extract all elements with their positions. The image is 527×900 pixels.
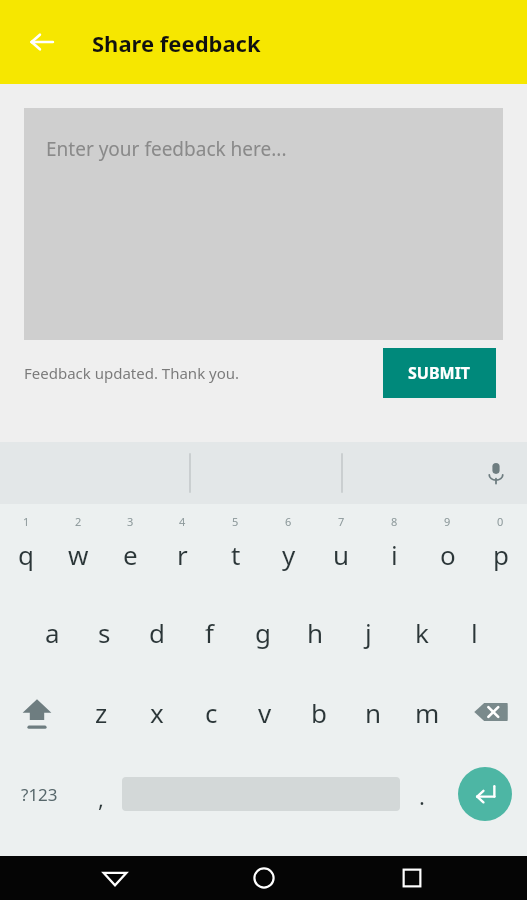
staticText: SUBMIT	[408, 362, 471, 384]
button[interactable]: a	[26, 592, 78, 672]
staticText: 0	[497, 514, 504, 529]
staticText: b	[311, 695, 327, 730]
staticText: 1	[23, 514, 30, 529]
staticText: z	[95, 695, 108, 730]
staticText: y	[282, 537, 296, 572]
button[interactable]: z	[74, 672, 129, 752]
button[interactable]: ,	[79, 752, 122, 836]
button[interactable]: g	[236, 592, 289, 672]
button[interactable]: Enter your feedback here...	[24, 108, 503, 340]
button[interactable]: Home	[231, 856, 297, 900]
button[interactable]: Back	[18, 18, 66, 66]
staticText: d	[149, 615, 165, 650]
button[interactable]: b	[292, 672, 346, 752]
staticText: u	[333, 537, 350, 572]
button[interactable]: l	[448, 592, 501, 672]
button[interactable]: Enter	[443, 752, 527, 836]
button[interactable]: Space	[122, 752, 400, 836]
staticText: w	[68, 537, 89, 572]
button[interactable]: ?123	[0, 752, 79, 836]
button[interactable]: k	[395, 592, 448, 672]
staticText: i	[391, 537, 398, 572]
button[interactable]: f	[183, 592, 236, 672]
button[interactable]: 0	[474, 504, 527, 592]
staticText: a	[45, 615, 60, 650]
button[interactable]: m	[400, 672, 454, 752]
button[interactable]: 4	[156, 504, 209, 592]
staticText: m	[415, 695, 440, 730]
button[interactable]: c	[184, 672, 238, 752]
staticText: Feedback updated. Thank you.	[24, 363, 240, 383]
staticText: 9	[444, 514, 451, 529]
staticText: .	[419, 781, 425, 811]
staticText: 6	[285, 514, 292, 529]
button[interactable]: j	[342, 592, 395, 672]
staticText: j	[365, 615, 372, 650]
button[interactable]: 1	[0, 504, 52, 592]
staticText: k	[415, 615, 429, 650]
staticText: r	[177, 537, 188, 572]
button[interactable]: 2	[52, 504, 104, 592]
button[interactable]: 5	[209, 504, 262, 592]
staticText: Enter your feedback here...	[46, 136, 287, 162]
staticText: x	[150, 695, 164, 730]
button[interactable]: 6	[262, 504, 315, 592]
staticText: 4	[179, 514, 186, 529]
staticText: ,	[98, 783, 104, 813]
button[interactable]: d	[130, 592, 183, 672]
staticText: v	[258, 695, 272, 730]
button[interactable]: n	[346, 672, 400, 752]
staticText: 2	[75, 514, 82, 529]
staticText: ?123	[21, 783, 58, 806]
button[interactable]: 7	[315, 504, 368, 592]
button[interactable]: s	[78, 592, 130, 672]
button[interactable]: SUBMIT	[383, 348, 496, 398]
button[interactable]: Voice input	[471, 448, 521, 498]
button[interactable]: x	[129, 672, 184, 752]
staticText: s	[98, 615, 111, 650]
staticText: Share feedback	[92, 28, 261, 58]
staticText: f	[205, 615, 214, 650]
staticText: g	[255, 615, 271, 650]
button[interactable]: Backspace	[454, 672, 527, 752]
button[interactable]: v	[238, 672, 292, 752]
staticText: h	[307, 615, 324, 650]
staticText: n	[365, 695, 382, 730]
staticText: q	[18, 537, 34, 572]
button[interactable]: h	[289, 592, 342, 672]
staticText: 5	[232, 514, 239, 529]
button[interactable]: 3	[104, 504, 156, 592]
staticText: o	[440, 537, 456, 572]
button[interactable]: 8	[368, 504, 421, 592]
staticText: l	[471, 615, 478, 650]
button[interactable]: 9	[421, 504, 474, 592]
staticText: p	[493, 537, 509, 572]
staticText: e	[123, 537, 138, 572]
staticText: c	[205, 695, 218, 730]
staticText: 7	[338, 514, 345, 529]
staticText: 3	[127, 514, 134, 529]
button[interactable]: .	[400, 752, 443, 836]
button[interactable]: Back	[82, 856, 148, 900]
button[interactable]: Recent apps	[379, 856, 445, 900]
button[interactable]: Shift	[0, 672, 74, 752]
staticText: t	[231, 537, 241, 572]
staticText: 8	[391, 514, 398, 529]
